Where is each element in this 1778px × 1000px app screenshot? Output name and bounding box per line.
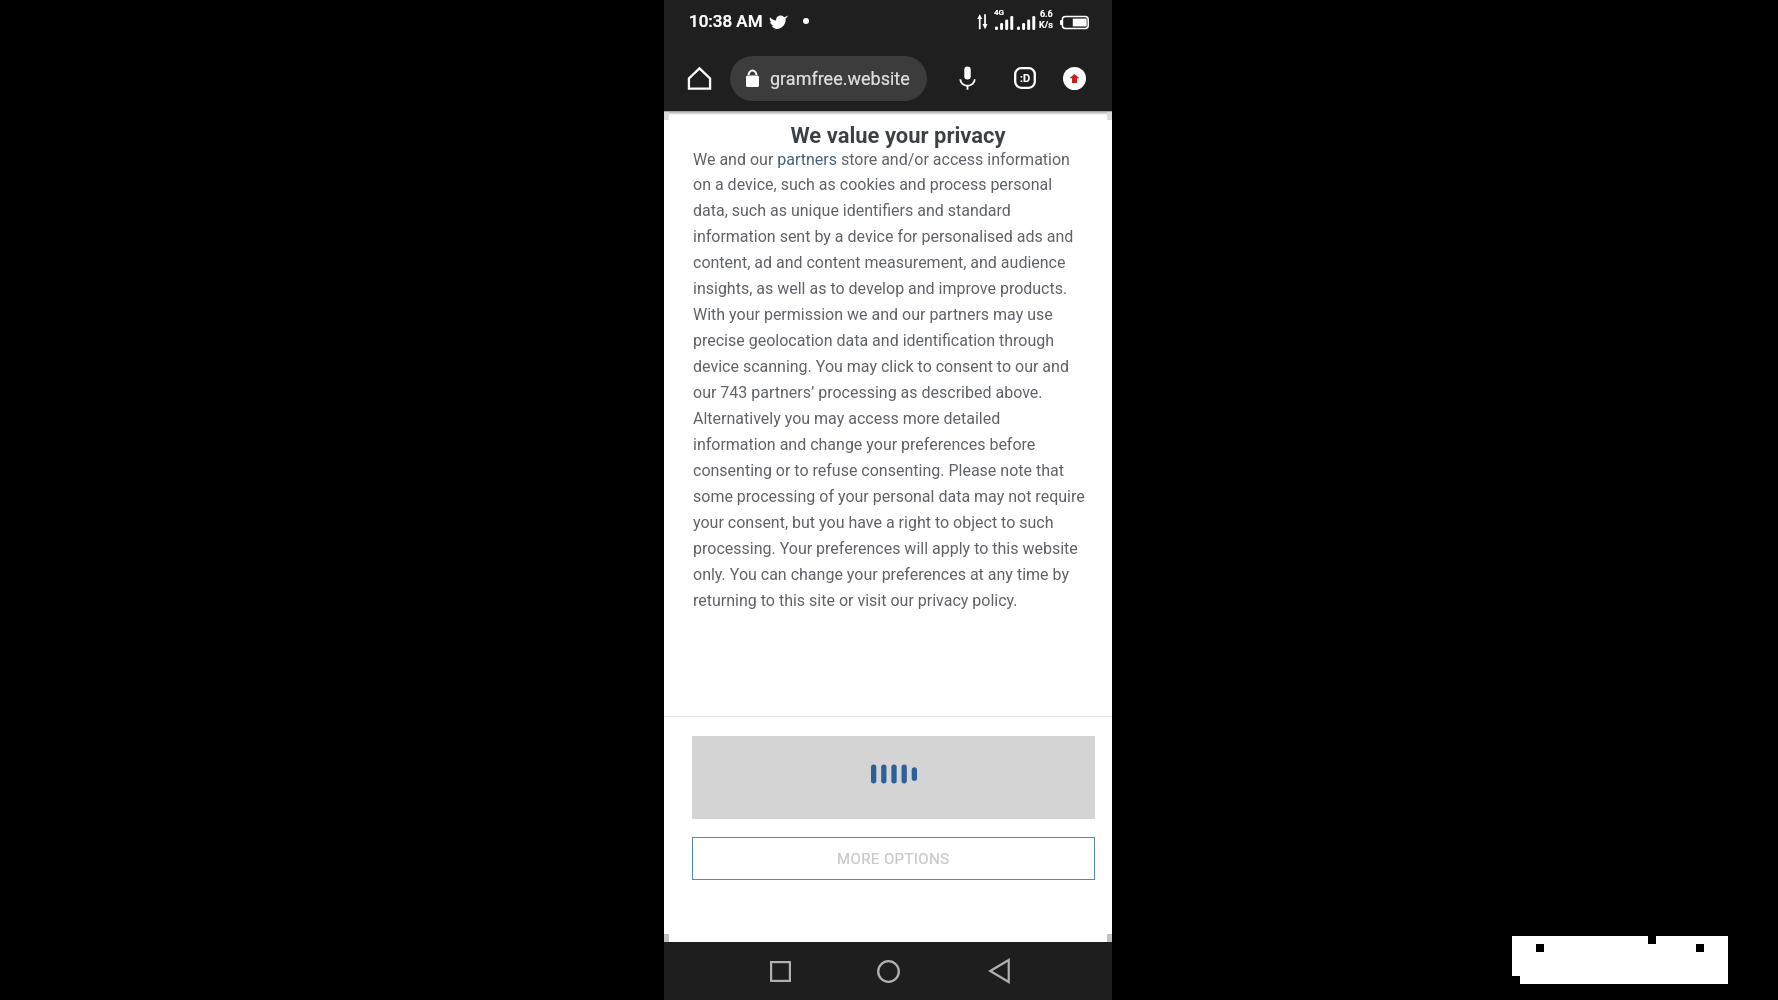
button[interactable]: MORE OPTIONS xyxy=(692,837,1095,880)
staticText: 4G xyxy=(994,8,1004,17)
staticText: :D xyxy=(1020,72,1031,85)
button[interactable]: Recent apps xyxy=(751,942,809,1000)
staticText: K/s xyxy=(1039,20,1053,31)
button[interactable]: Back xyxy=(970,942,1028,1000)
button[interactable]: Switch tabs xyxy=(1004,57,1046,99)
button[interactable]: Home xyxy=(859,942,917,1000)
button[interactable]: Loading advertisement xyxy=(692,736,1095,819)
button[interactable]: Voice search xyxy=(946,57,988,99)
staticText: 6.6 xyxy=(1040,9,1053,20)
button[interactable]: Home xyxy=(678,57,720,99)
button[interactable]: gramfree.website xyxy=(730,56,927,101)
staticText: We value your privacy xyxy=(674,123,1122,149)
staticText: gramfree.website xyxy=(770,68,910,89)
staticText: MORE OPTIONS xyxy=(837,850,950,868)
staticText: We and our partners store and/or access … xyxy=(693,150,1086,610)
button[interactable]: Update available xyxy=(1053,57,1095,99)
staticText: 10:38 AM xyxy=(689,11,763,31)
